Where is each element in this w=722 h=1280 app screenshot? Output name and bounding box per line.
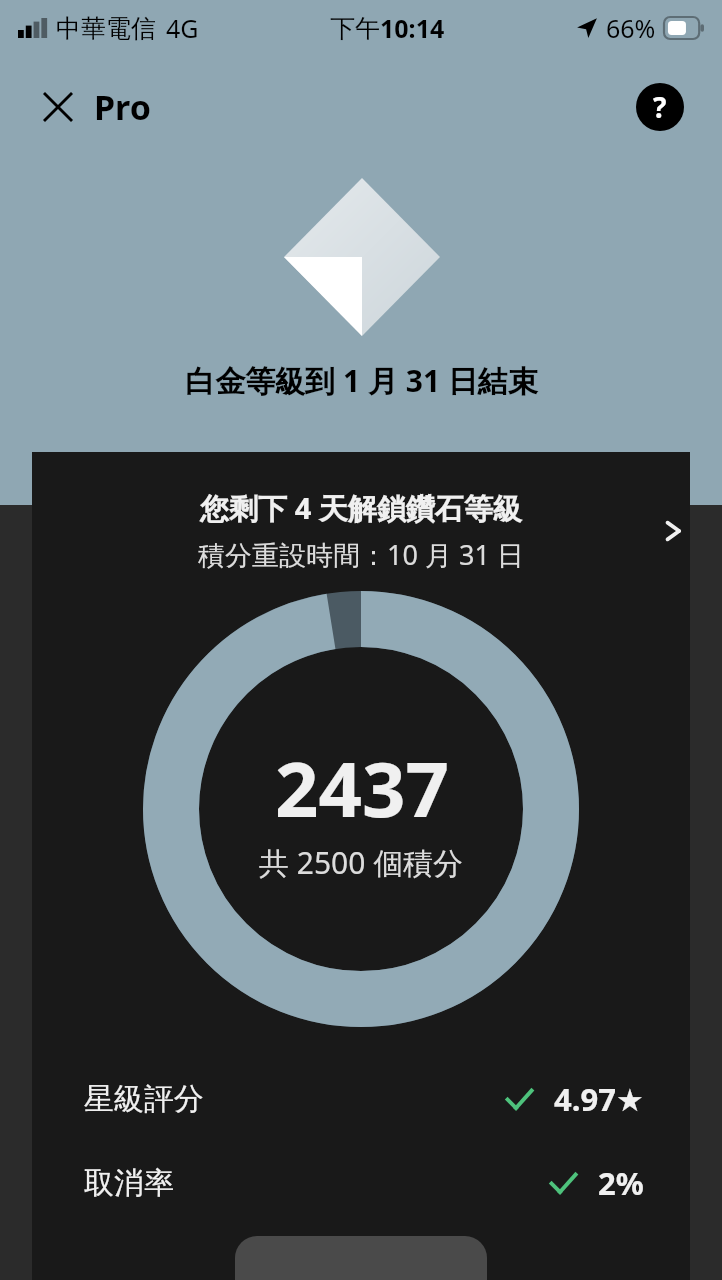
staticText: 2% xyxy=(598,1162,644,1204)
staticText: 中華電信 xyxy=(56,13,156,44)
staticText: 共 2500 個積分 xyxy=(259,842,464,883)
staticText: ? xyxy=(653,88,667,126)
staticText: 2437 xyxy=(275,736,449,840)
staticText: 4G xyxy=(166,11,199,45)
staticText: 白金等級到 1 月 31 日結束 xyxy=(185,360,538,401)
staticText: 66% xyxy=(606,11,656,45)
staticText: 您剩下 4 天解鎖鑽石等級 xyxy=(200,488,522,528)
button[interactable]: 星級評分 xyxy=(32,1057,690,1141)
staticText: 10:14 xyxy=(380,11,445,45)
button[interactable]: Help xyxy=(636,83,684,131)
button[interactable]: Close xyxy=(36,85,80,129)
staticText: 積分重設時間：10 月 31 日 xyxy=(198,536,524,573)
staticText: 下午 xyxy=(330,13,380,44)
button[interactable] xyxy=(235,1236,487,1280)
staticText: 取消率 xyxy=(84,1164,174,1202)
button[interactable]: 取消率 xyxy=(32,1141,690,1225)
button[interactable]: 您剩下 4 天解鎖鑽石等級 xyxy=(32,482,690,579)
staticText: Pro xyxy=(94,84,151,130)
staticText: 4.97★ xyxy=(554,1078,644,1120)
staticText: 星級評分 xyxy=(84,1080,204,1118)
